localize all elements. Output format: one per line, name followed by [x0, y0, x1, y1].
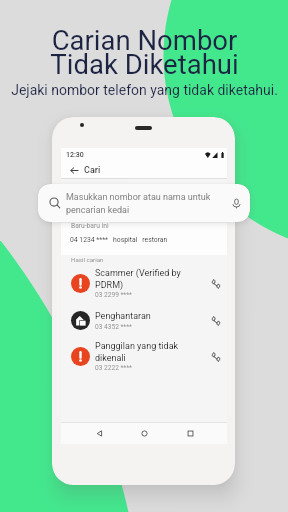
button[interactable]: Call — [209, 314, 223, 328]
staticText: Cari — [84, 165, 101, 176]
button[interactable]: Masukkan nombor atau nama untuk pencaria… — [38, 184, 250, 222]
staticText: Baru-baru ini — [71, 222, 109, 230]
other: Back — [70, 166, 79, 175]
button[interactable]: Call — [209, 277, 223, 291]
staticText: Masukkan nombor atau nama untuk pencaria… — [66, 192, 211, 215]
staticText: 03 4352 **** — [95, 323, 132, 331]
button[interactable]: Panggilan yang tidak dikenali — [61, 338, 227, 375]
button[interactable]: Home — [136, 425, 152, 441]
button[interactable]: Scammer (Verified by PDRM) — [61, 265, 227, 302]
staticText: Hasil carian — [71, 256, 104, 263]
button[interactable]: Recents — [182, 425, 198, 441]
button[interactable]: Back — [91, 425, 107, 441]
staticText: 03 2299 **** — [95, 291, 132, 299]
staticText: Panggilan yang tidak dikenali — [95, 341, 179, 363]
staticText: Jejaki nombor telefon yang tidak diketah… — [11, 82, 278, 98]
button[interactable]: Call — [209, 350, 223, 364]
button[interactable]: Penghantaran — [61, 302, 227, 339]
staticText: 12:30 — [66, 151, 84, 159]
button[interactable]: Voice search — [228, 195, 244, 211]
staticText: Penghantaran — [95, 311, 151, 322]
staticText: Carian Nombor Tidak Diketahui — [50, 24, 239, 81]
staticText: Scammer (Verified by PDRM) — [95, 268, 181, 290]
staticText: 04 1234 **** hospital restoran — [70, 236, 168, 244]
button[interactable]: Back — [70, 162, 227, 178]
staticText: 03 2222 **** — [95, 364, 132, 372]
